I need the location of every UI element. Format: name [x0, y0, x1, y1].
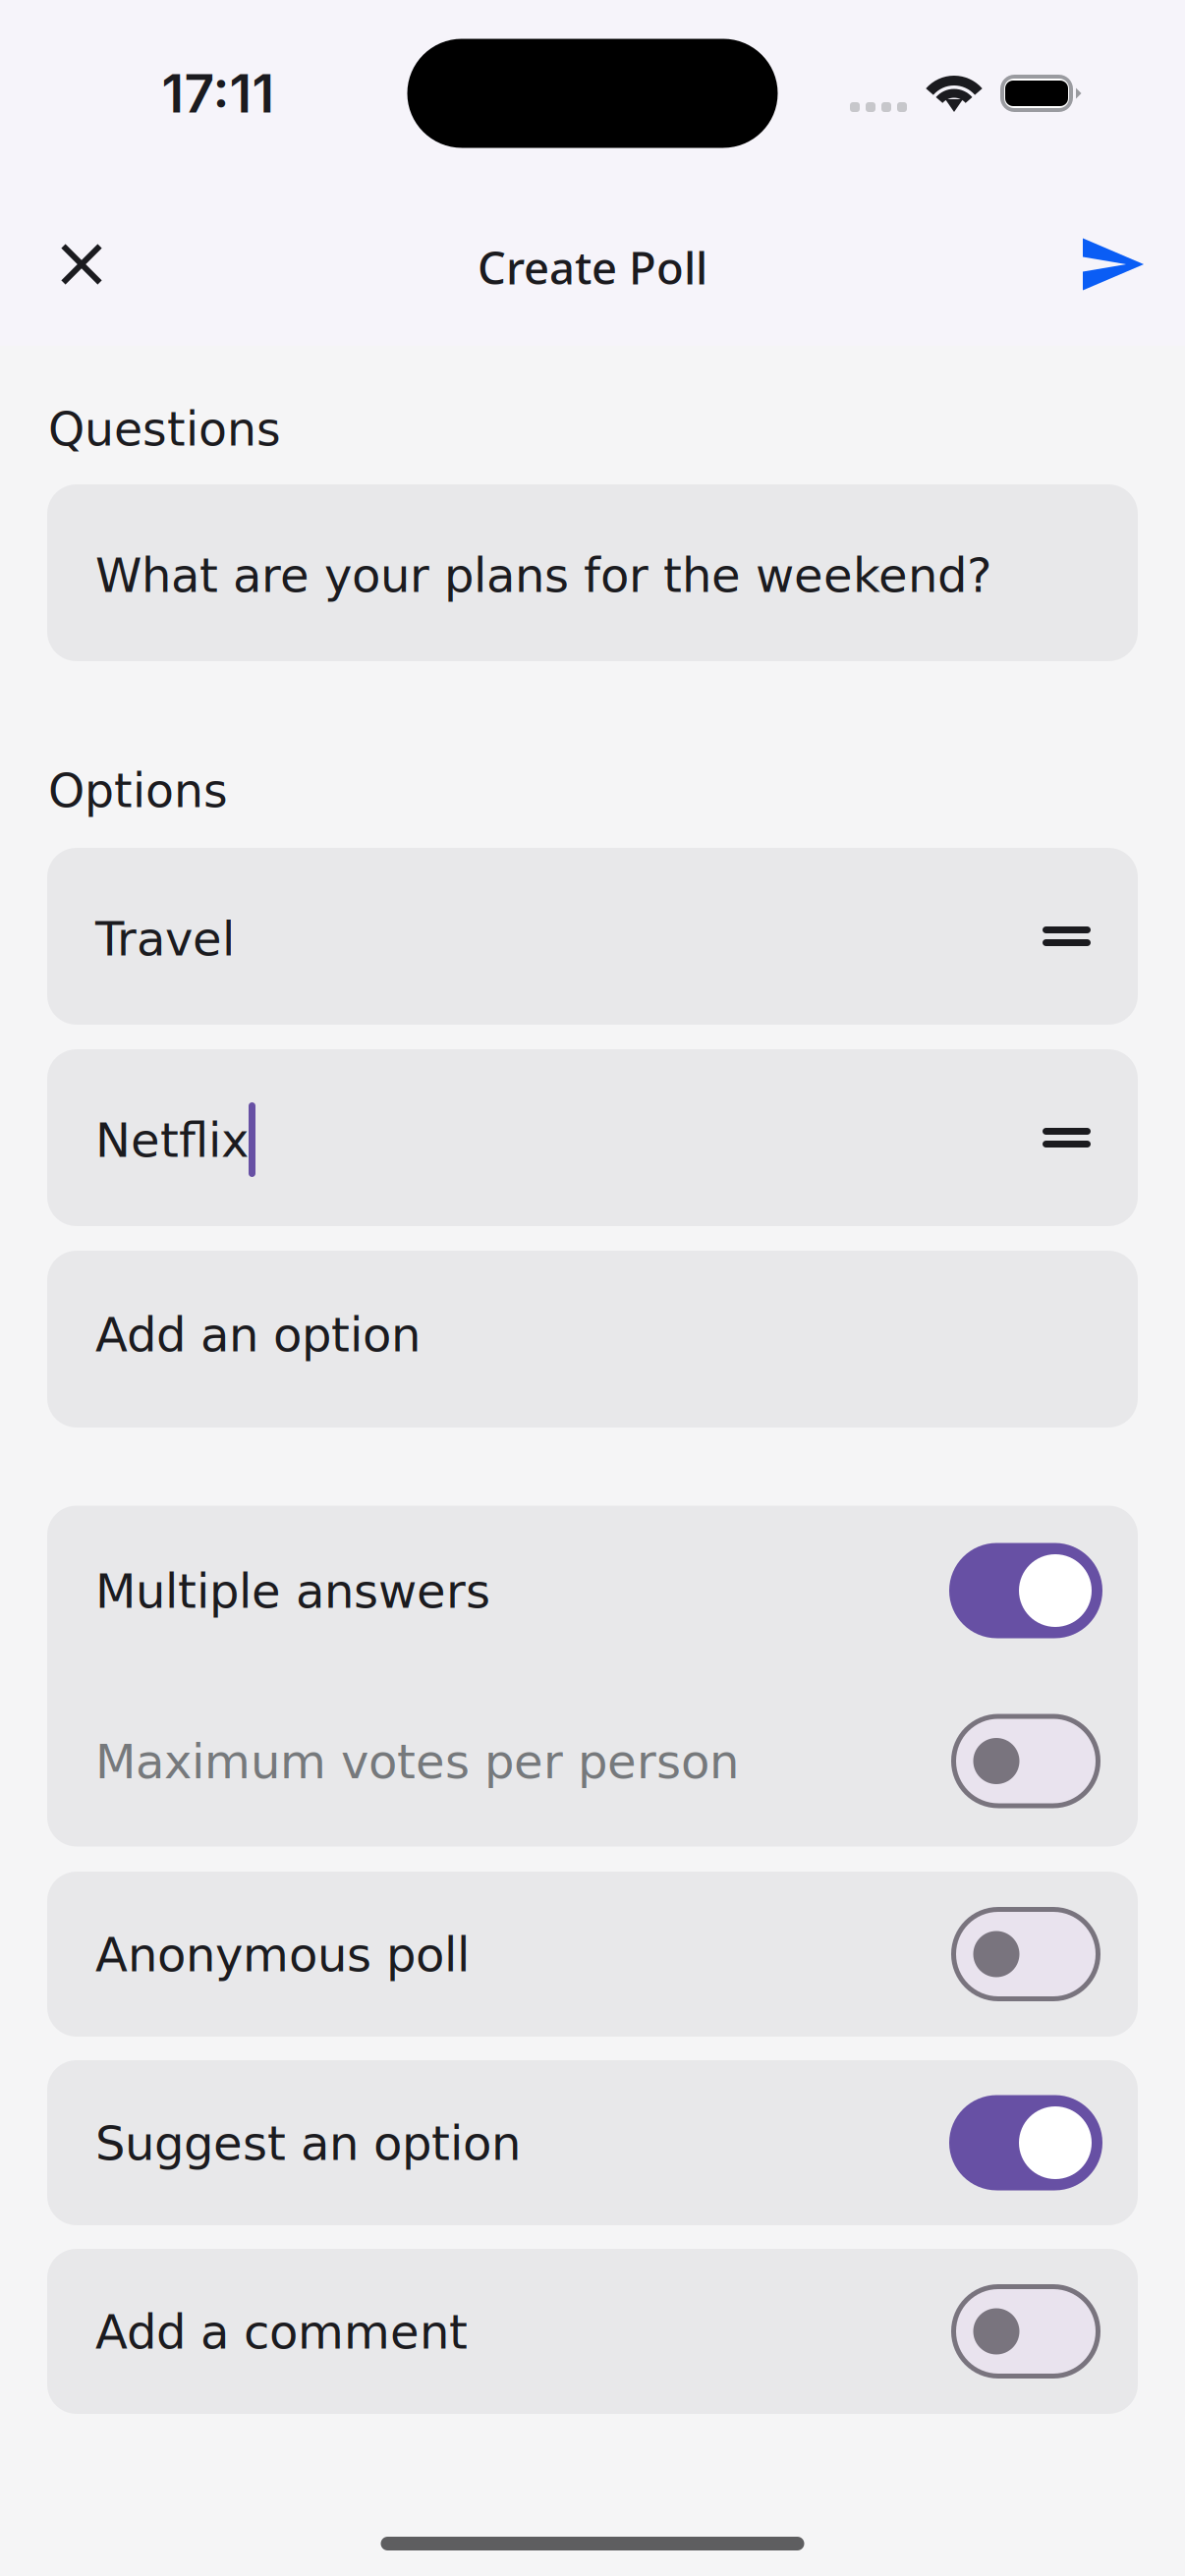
staticText: What are your plans for the weekend? [95, 548, 991, 603]
button[interactable]: Multiple answers [47, 1506, 1138, 1676]
button[interactable]: Travel [47, 848, 1138, 1025]
staticText: Options [48, 764, 228, 818]
staticText: Add an option [95, 1308, 421, 1363]
button[interactable]: Send [1054, 205, 1172, 323]
staticText: Anonymous poll [95, 1928, 470, 1983]
button[interactable]: What are your plans for the weekend? [47, 484, 1138, 661]
staticText: 17:11 [162, 62, 275, 125]
staticText: Add a comment [95, 2305, 468, 2360]
button[interactable]: Suggest an option [47, 2060, 1138, 2225]
button[interactable]: Anonymous poll [47, 1872, 1138, 2037]
staticText: Suggest an option [95, 2116, 521, 2171]
staticText: Multiple answers [95, 1564, 490, 1619]
staticText: Maximum votes per person [95, 1735, 739, 1790]
staticText: Create Poll [478, 237, 707, 297]
button[interactable]: Netflix [47, 1049, 1138, 1226]
button[interactable]: Maximum votes per person [47, 1676, 1138, 1847]
staticText: Questions [48, 402, 281, 456]
button[interactable]: Add an option [47, 1251, 1138, 1428]
staticText: Netflix [95, 1113, 249, 1168]
button[interactable]: Add a comment [47, 2249, 1138, 2414]
staticText: Travel [95, 912, 235, 967]
button[interactable]: Close [23, 205, 141, 323]
